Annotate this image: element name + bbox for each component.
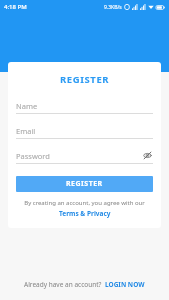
staticText: Email [16, 126, 36, 136]
button[interactable]: LOGIN NOW [105, 280, 145, 289]
staticText: 9.3KB/s [104, 4, 122, 11]
staticText: Terms & Privacy [59, 209, 111, 218]
staticText: REGISTER [60, 73, 110, 86]
staticText: By creating an account, you agree with o… [24, 199, 145, 207]
button[interactable]: REGISTER [16, 176, 153, 192]
staticText: Name [16, 101, 38, 111]
staticText: REGISTER [66, 179, 103, 189]
button[interactable]: Show password [142, 150, 153, 161]
staticText: 4:18 PM [4, 3, 27, 11]
staticText: LOGIN NOW [105, 280, 145, 289]
button[interactable]: Terms & Privacy [59, 209, 111, 218]
staticText: Already have an account? [24, 280, 102, 289]
staticText: Password [16, 151, 50, 161]
